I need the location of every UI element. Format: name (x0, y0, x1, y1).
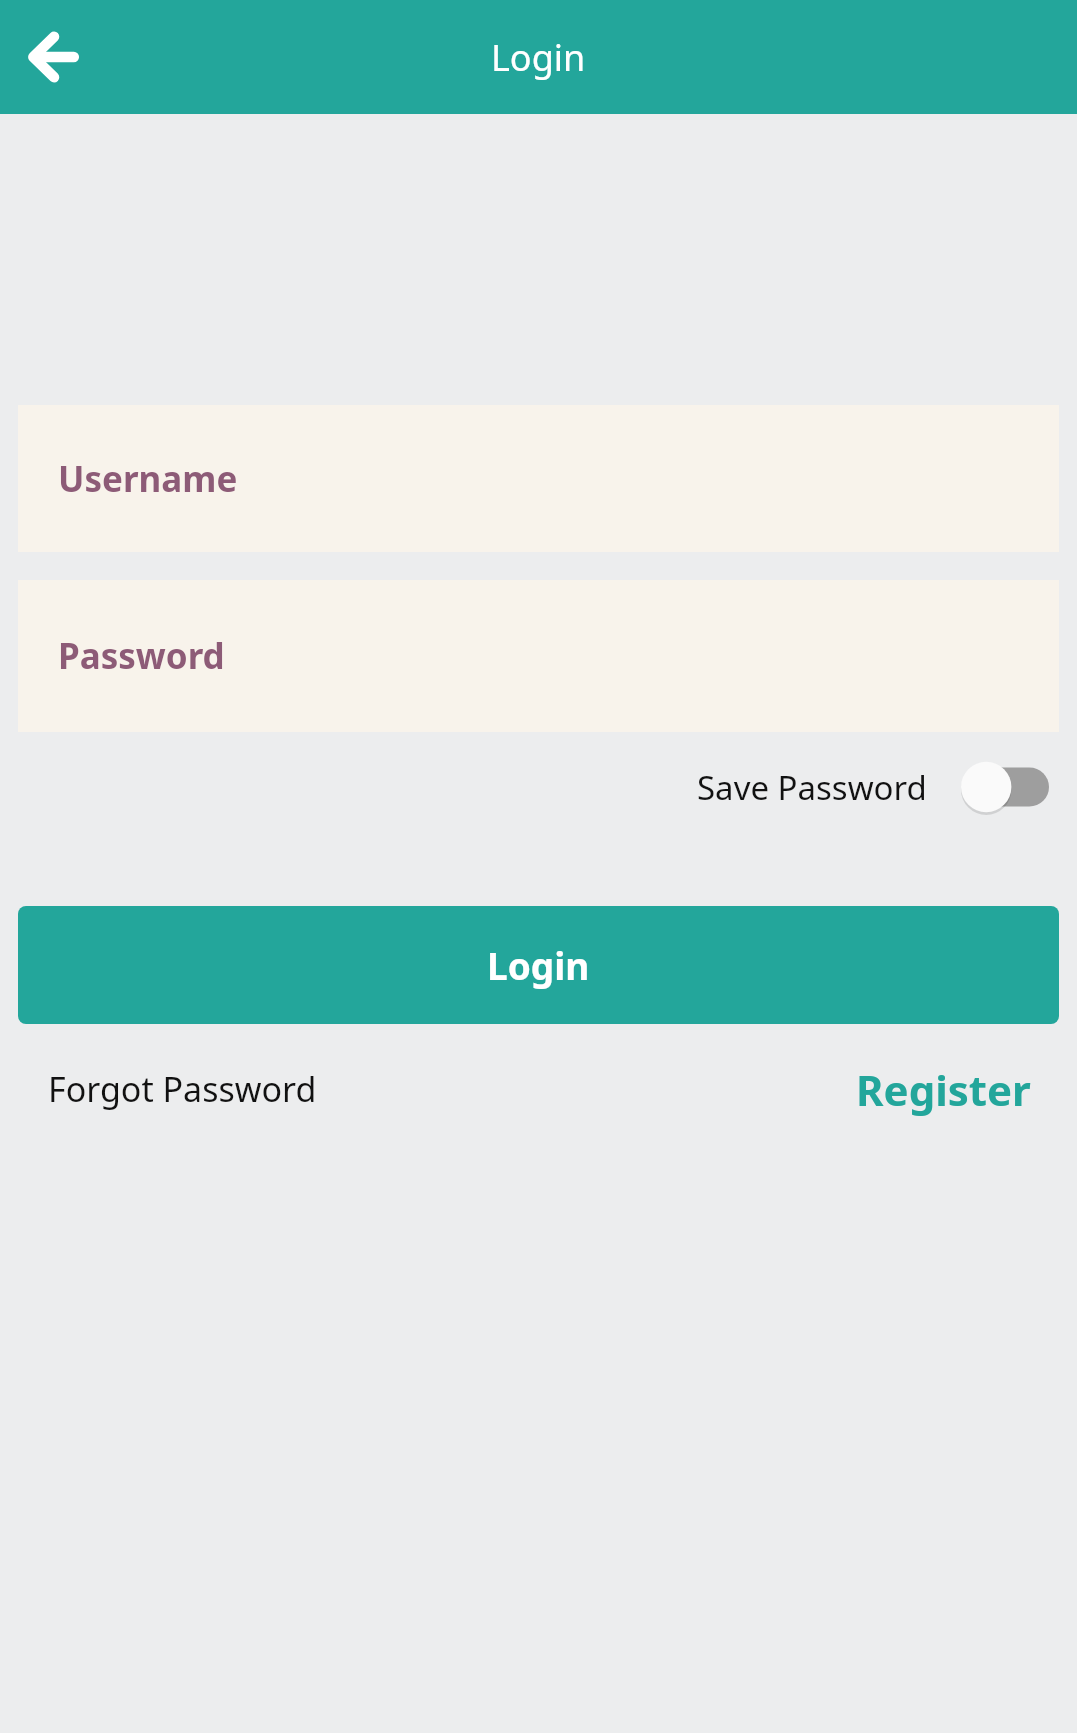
button[interactable]: Login (18, 906, 1059, 1024)
button[interactable]: Back (12, 17, 92, 97)
button[interactable]: Register (846, 1051, 1041, 1128)
staticText: Login (487, 940, 590, 990)
staticText: Username (58, 455, 238, 503)
staticText: Login (491, 33, 586, 82)
staticText: Password (58, 632, 225, 680)
staticText: Forgot Password (48, 1066, 317, 1112)
button[interactable]: Password (18, 580, 1059, 732)
button[interactable]: Username (18, 405, 1059, 552)
button[interactable]: Forgot Password (34, 1056, 331, 1122)
button[interactable]: Save Password (693, 753, 1053, 821)
staticText: Register (856, 1061, 1031, 1118)
staticText: Save Password (697, 765, 927, 810)
